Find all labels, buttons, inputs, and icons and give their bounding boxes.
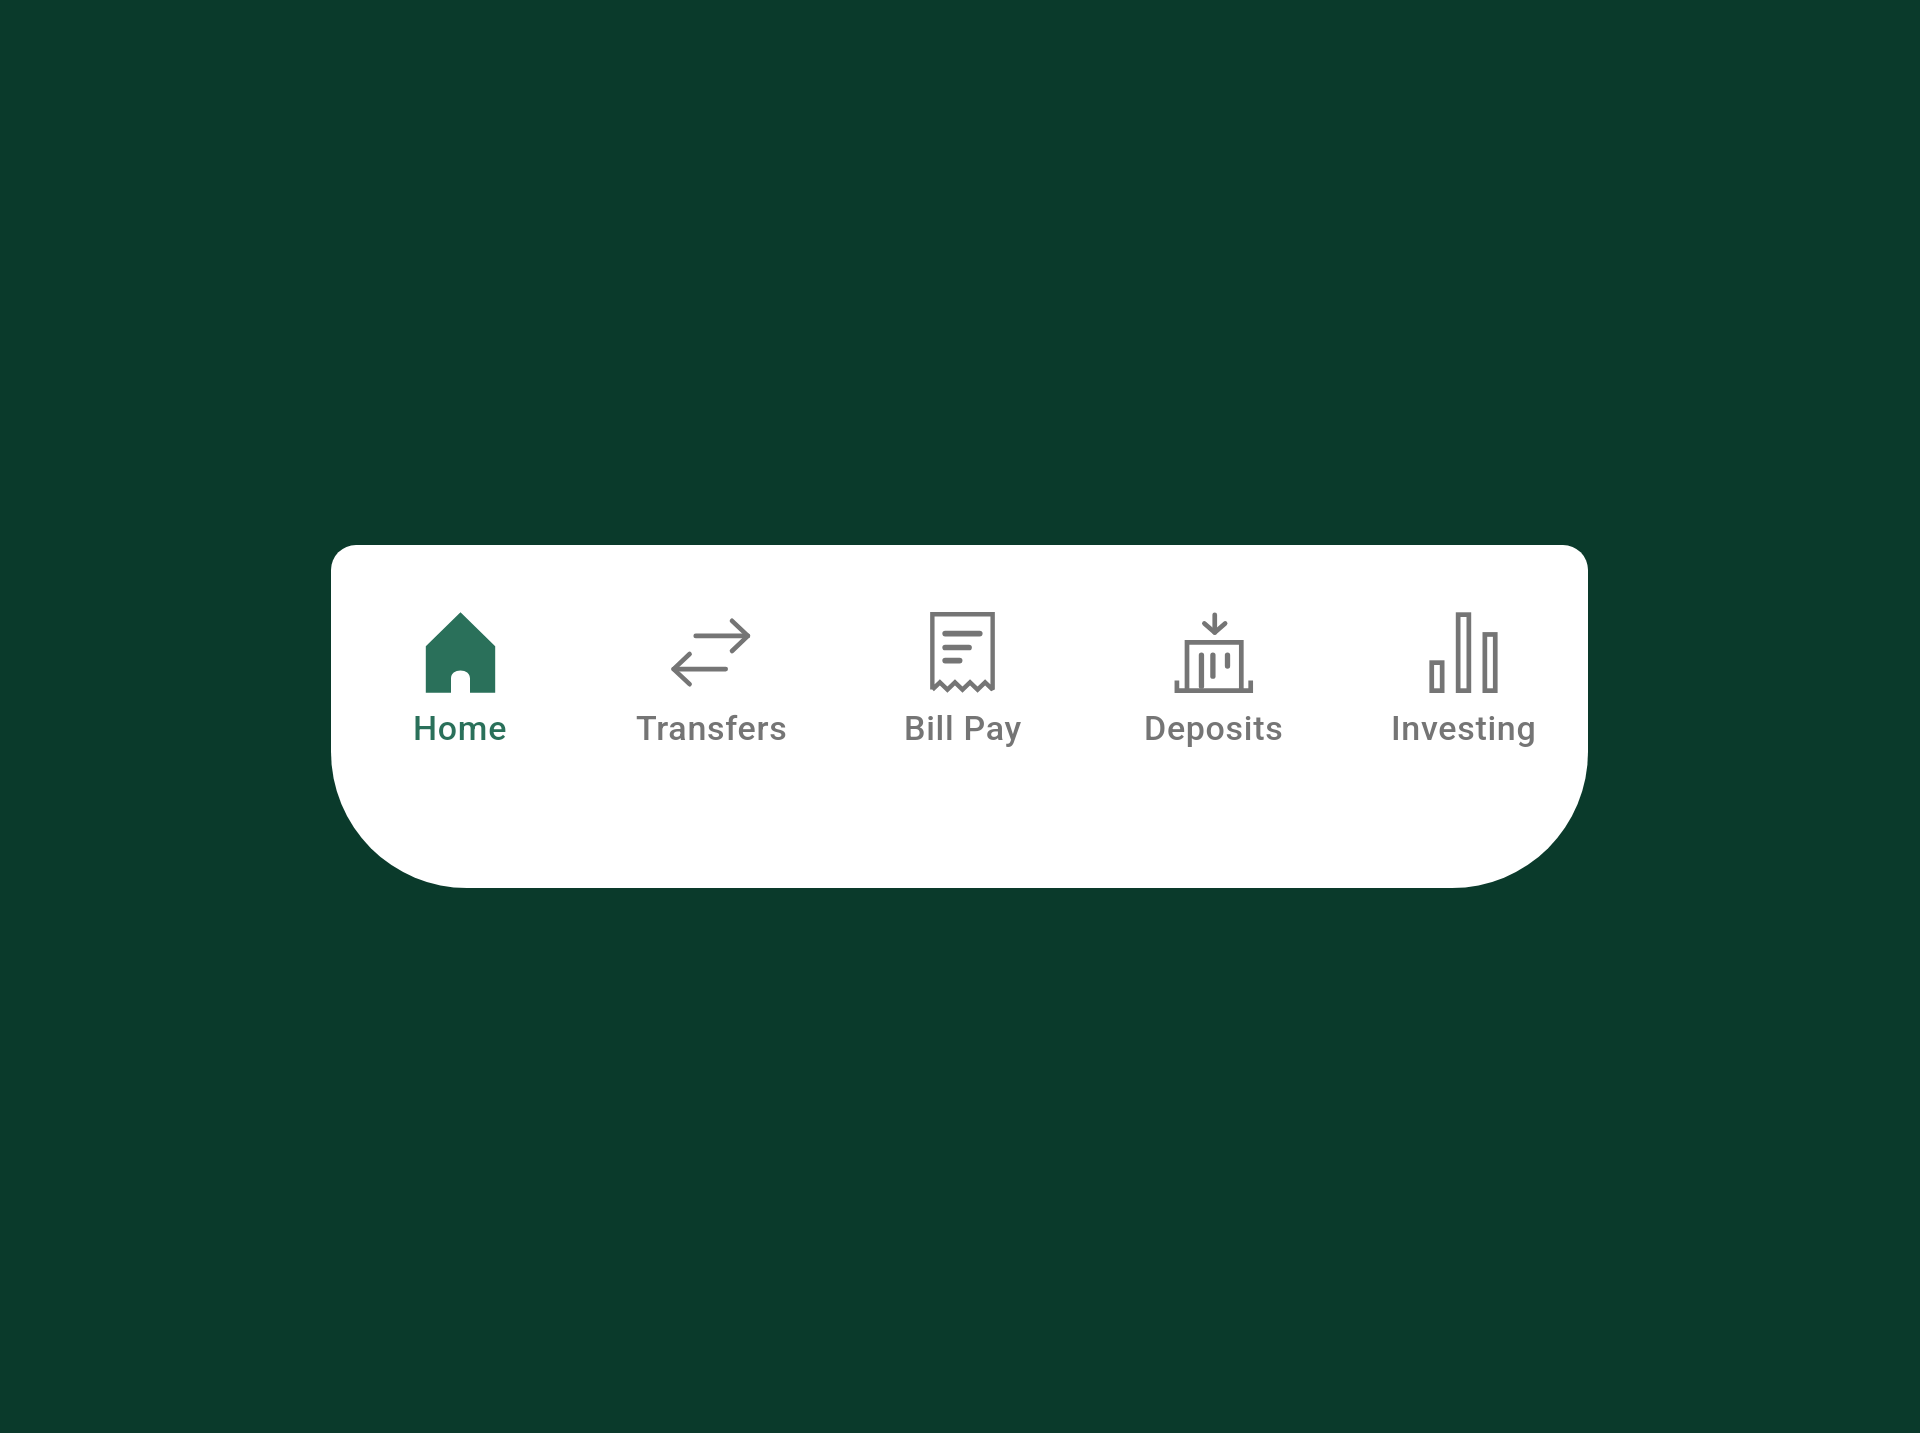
button[interactable]: Investing	[1339, 545, 1588, 888]
button[interactable]: Home	[335, 545, 586, 888]
other: Bill Pay	[922, 612, 1003, 693]
button[interactable]: Bill Pay	[837, 545, 1088, 888]
staticText: Bill Pay	[904, 708, 1022, 748]
other: Transfers	[671, 612, 752, 693]
button[interactable]: Deposits	[1088, 545, 1339, 888]
staticText: Deposits	[1144, 708, 1284, 748]
other: Investing	[1423, 612, 1504, 693]
staticText: Transfers	[636, 708, 788, 748]
other: Home	[420, 612, 501, 693]
staticText: Investing	[1391, 708, 1537, 748]
staticText: Home	[413, 708, 508, 748]
button[interactable]: Transfers	[586, 545, 837, 888]
other: Deposits	[1173, 612, 1254, 693]
